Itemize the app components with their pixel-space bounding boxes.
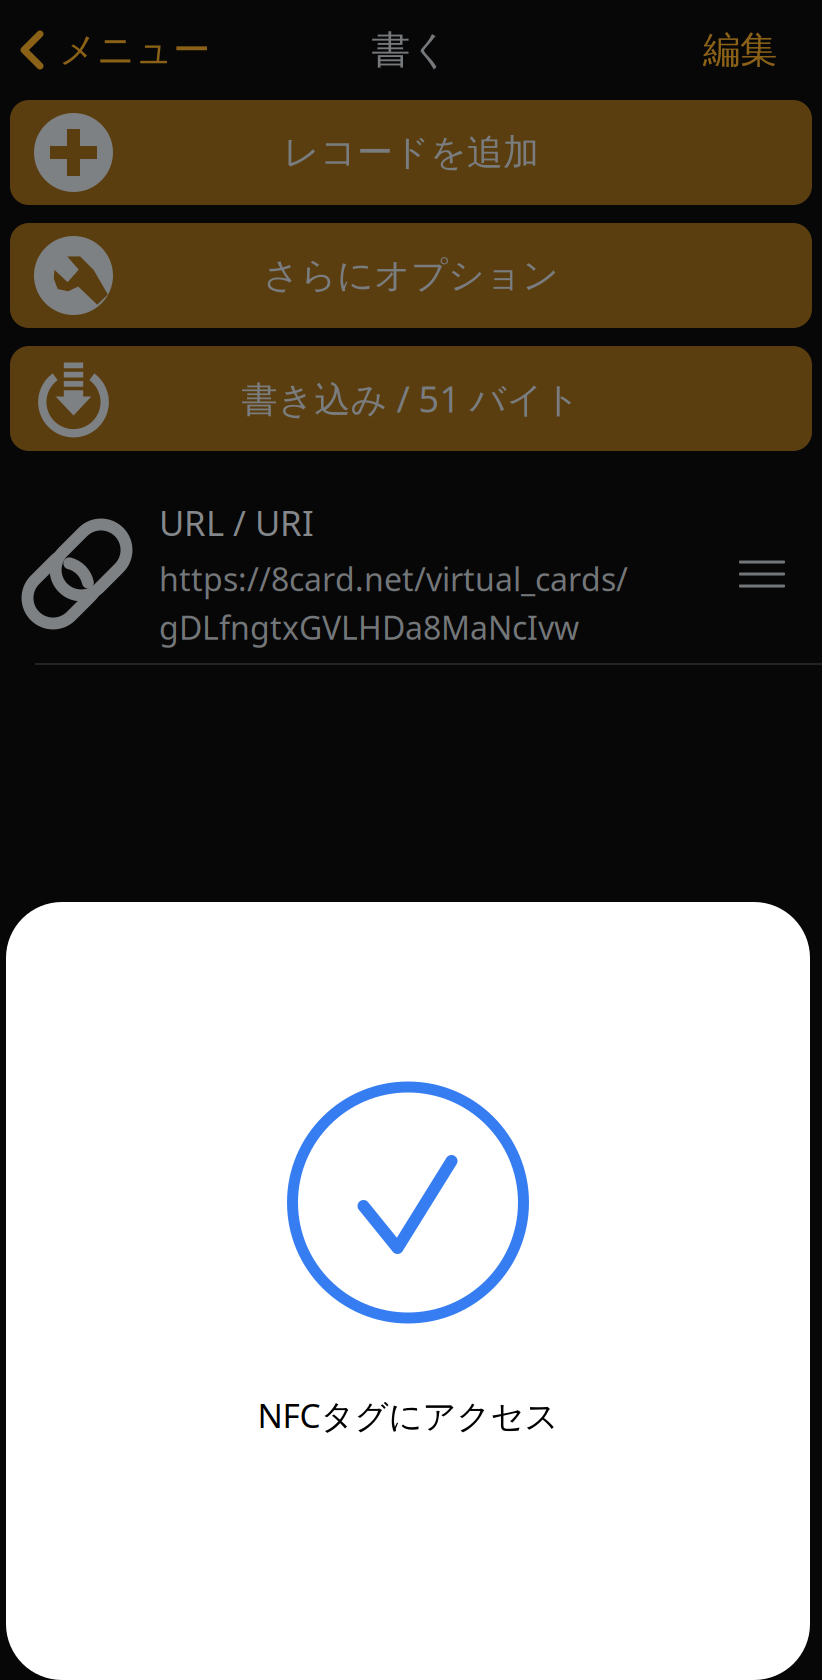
staticText: 書き込み / 51 バイト <box>241 375 580 422</box>
staticText: https://8card.net/virtual_cards/ <box>159 557 628 600</box>
button[interactable]: 書き込み / 51 バイト <box>10 346 812 451</box>
staticText: gDLfngtxGVLHDa8MaNcIvw <box>159 606 579 648</box>
staticText: 編集 <box>703 27 777 73</box>
staticText: レコードを追加 <box>283 130 539 175</box>
button[interactable]: さらにオプション <box>10 223 812 328</box>
staticText: NFCタグにアクセス <box>257 1393 558 1437</box>
button[interactable]: レコードを追加 <box>10 100 812 205</box>
staticText: URL / URI <box>159 499 314 545</box>
button[interactable]: メニュー <box>0 18 210 82</box>
button[interactable]: 編集 <box>703 18 822 82</box>
staticText: さらにオプション <box>263 253 559 298</box>
staticText: 書く <box>371 26 450 74</box>
staticText: メニュー <box>59 27 210 73</box>
